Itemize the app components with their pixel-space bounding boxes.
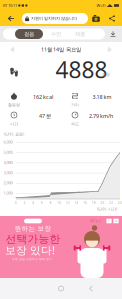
button[interactable]: Next day bbox=[102, 43, 118, 55]
staticText: Wi-Fi bbox=[97, 3, 106, 8]
button[interactable]: Close ad bbox=[113, 219, 119, 223]
button[interactable]: 원하는 보장 bbox=[0, 216, 122, 278]
staticText: 0 bbox=[15, 201, 17, 205]
staticText: 보험 상담 신청하고 혜택 받기 bbox=[12, 257, 52, 261]
staticText: 수면 bbox=[51, 31, 61, 37]
staticText: 4888 bbox=[55, 54, 107, 84]
button[interactable]: 걸음 bbox=[15, 29, 43, 39]
staticText: 14 bbox=[75, 201, 79, 205]
staticText: (단위: 걸음) bbox=[4, 131, 24, 137]
staticText: 24 bbox=[118, 201, 122, 205]
staticText: 선택가능한 bbox=[5, 232, 60, 245]
staticText: 4,000 bbox=[3, 160, 12, 165]
staticText: 16 bbox=[83, 201, 87, 205]
staticText: 8 bbox=[50, 201, 52, 205]
staticText: 6,000 bbox=[3, 139, 12, 145]
staticText: 거리 bbox=[71, 102, 79, 107]
staticText: 10 bbox=[57, 201, 61, 205]
staticText: 1,000 bbox=[3, 190, 12, 196]
button[interactable]: Home bbox=[46, 278, 76, 299]
button[interactable]: Share bbox=[105, 12, 118, 24]
staticText: (단위: 시간) bbox=[97, 206, 117, 212]
staticText: 11월 14일 목요일 bbox=[41, 46, 81, 53]
button[interactable]: Camera bbox=[89, 12, 102, 24]
staticText: 3.18 km bbox=[92, 93, 111, 101]
button[interactable]: 체중 bbox=[68, 29, 92, 39]
staticText: 12 bbox=[66, 201, 70, 205]
button[interactable]: Ad info bbox=[106, 219, 112, 223]
staticText: 2 bbox=[24, 201, 26, 205]
button[interactable]: Download bbox=[106, 28, 120, 40]
staticText: 4 bbox=[32, 201, 34, 205]
staticText: 걸음 bbox=[102, 72, 110, 77]
staticText: 속도 bbox=[71, 121, 79, 126]
staticText: 2,000 bbox=[3, 180, 12, 185]
staticText: 22 bbox=[109, 201, 113, 205]
staticText: 18 bbox=[92, 201, 96, 205]
staticText: 3,000 bbox=[3, 170, 12, 175]
staticText: 6 bbox=[41, 201, 43, 205]
staticText: 원하는 보장 bbox=[14, 224, 51, 233]
staticText: 활동량 bbox=[8, 102, 20, 107]
staticText: KT 10:11 bbox=[3, 3, 17, 8]
staticText: 걸음 bbox=[24, 31, 34, 37]
staticText: 5,000 bbox=[3, 149, 12, 155]
staticText: 체중 bbox=[75, 31, 85, 37]
staticText: 시간 bbox=[10, 121, 18, 126]
button[interactable]: Previous day bbox=[4, 43, 20, 55]
staticText: 2.79 km/h bbox=[89, 112, 113, 120]
staticText: AD 광고 bbox=[90, 219, 101, 223]
staticText: 20 bbox=[101, 201, 105, 205]
staticText: 보장 있다! bbox=[5, 243, 55, 257]
button[interactable]: Back bbox=[78, 278, 104, 299]
button[interactable]: 지원이 일치하지 않습니다 bbox=[22, 13, 88, 24]
button[interactable]: 수면 bbox=[44, 29, 68, 39]
staticText: 162 kcal bbox=[33, 93, 53, 101]
staticText: 지원이 일치하지 않습니다 bbox=[31, 16, 77, 21]
staticText: i bbox=[108, 219, 109, 223]
staticText: 47 분 bbox=[39, 112, 51, 120]
button[interactable]: Back bbox=[4, 13, 18, 24]
